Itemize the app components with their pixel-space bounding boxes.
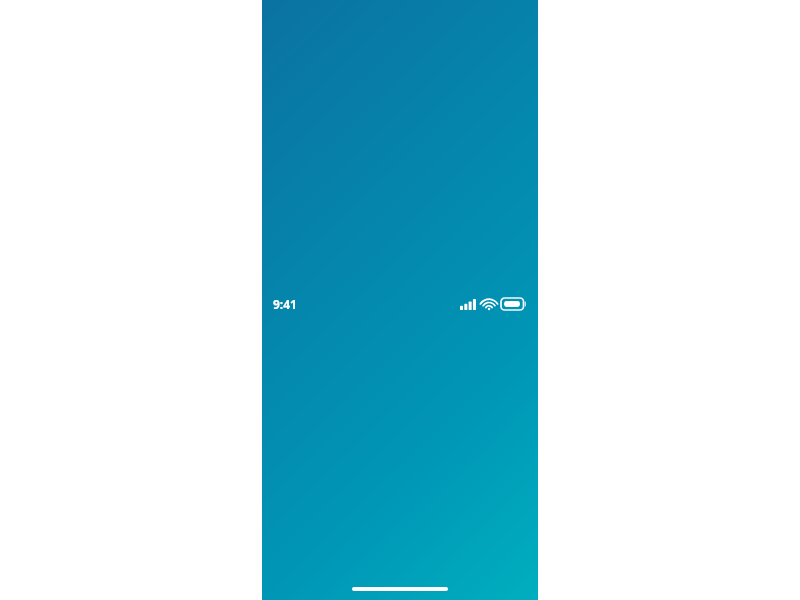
other: Battery: [501, 298, 526, 310]
staticText: 9:41: [273, 296, 297, 312]
other: Wi-Fi: [482, 299, 496, 310]
button[interactable]: Home: [352, 587, 448, 591]
other: Cellular signal: [460, 299, 477, 310]
